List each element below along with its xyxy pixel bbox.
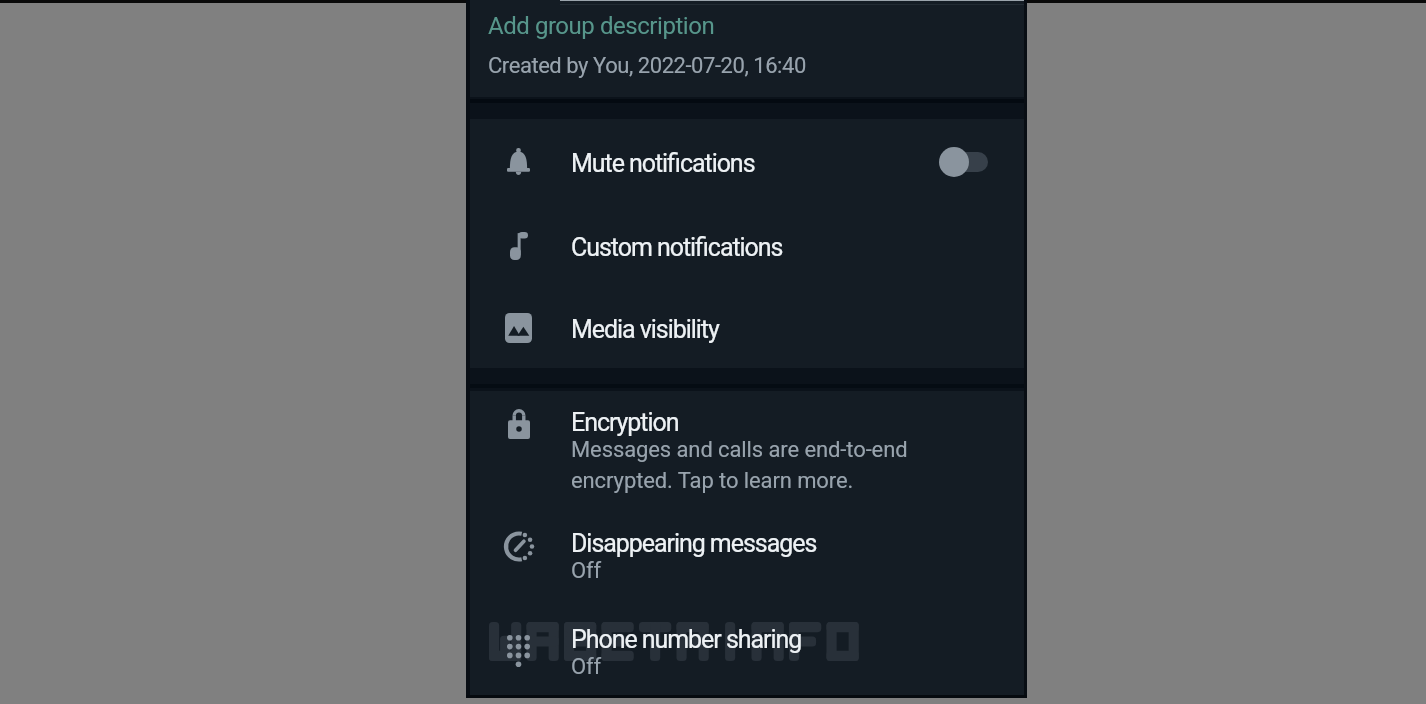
staticText: Custom notifications [571, 233, 783, 262]
staticText: Created by You, 2022-07-20, 16:40 [488, 53, 806, 79]
staticText: Encryption [571, 408, 679, 437]
button[interactable] [466, 119, 1027, 202]
staticText: Messages and calls are end-to-end encryp… [571, 437, 908, 493]
button[interactable] [466, 597, 1027, 704]
staticText: Off [571, 654, 602, 680]
staticText: Add group description [488, 12, 715, 40]
button[interactable] [466, 501, 1027, 597]
other: Disappearing messages [504, 532, 533, 561]
staticText: Media visibility [571, 315, 719, 344]
other: Encryption [508, 409, 530, 439]
other: Custom notifications [510, 232, 528, 260]
button[interactable] [466, 391, 1027, 501]
button[interactable] [466, 286, 1027, 367]
button[interactable]: Mute notifications switch [936, 144, 992, 178]
other: Phone number sharing [507, 635, 530, 667]
button[interactable] [466, 4, 1027, 97]
staticText: Disappearing messages [571, 529, 817, 558]
staticText: Mute notifications [571, 149, 755, 178]
staticText: Off [571, 558, 602, 584]
other: Media visibility [505, 313, 532, 343]
button[interactable] [466, 202, 1027, 286]
staticText: Phone number sharing [571, 625, 802, 654]
other: Mute notifications [507, 148, 530, 176]
